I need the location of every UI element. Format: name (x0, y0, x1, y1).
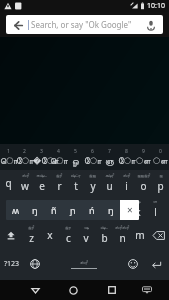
button[interactable]: Voice search (143, 17, 159, 33)
button[interactable]: Close (120, 200, 139, 220)
button[interactable]: ஹ (92, 196, 110, 222)
button[interactable]: Space (46, 248, 122, 280)
staticText: 5 (74, 148, 77, 155)
staticText: ʍ (12, 204, 20, 216)
staticText: r (57, 179, 62, 193)
button[interactable]: Shift (0, 222, 21, 248)
button[interactable]: 1 (0, 144, 16, 170)
button[interactable]: ஞ (56, 196, 74, 222)
button[interactable]: 5 (67, 144, 84, 170)
staticText: ஞ (63, 199, 68, 204)
staticText: o (140, 179, 147, 193)
button[interactable]: ஸ் (5, 196, 22, 222)
button[interactable]: Emoji (122, 248, 144, 280)
staticText: ஷ்ட்ர (70, 173, 81, 178)
button[interactable]: ங (74, 196, 92, 222)
staticText: ஜ (159, 173, 163, 178)
staticText: 10:10 (147, 1, 165, 11)
staticText: ஸ் (12, 199, 17, 204)
button[interactable]: 3 (33, 144, 50, 170)
staticText: ஷ்ட (100, 225, 108, 230)
staticText: ஜ்ஜ (89, 173, 96, 178)
button[interactable]: ஜஜஜ்ரீ (135, 170, 152, 196)
staticText: x (47, 228, 53, 242)
button[interactable]: 7 (101, 144, 118, 170)
staticText: ோ (84, 157, 101, 166)
staticText: t (74, 179, 78, 193)
staticText: ஸ்ரீ (123, 173, 130, 178)
button[interactable]: ŋ (101, 200, 120, 220)
staticText: கஷ்ட (36, 173, 47, 178)
button[interactable]: Hide keyboard (133, 280, 160, 300)
staticText: k (135, 205, 141, 219)
button[interactable]: 0 (152, 144, 169, 170)
staticText: க்ஷ்ரீ (105, 173, 114, 178)
button[interactable]: 6 (84, 144, 101, 170)
button[interactable]: க்ஷ்ரீ (101, 170, 118, 196)
staticText: p (157, 179, 164, 193)
staticText: m (135, 228, 145, 242)
button[interactable]: ஜ்ரீ (50, 170, 67, 196)
button[interactable]: Back (22, 280, 49, 300)
button[interactable]: 2 (16, 144, 33, 170)
button[interactable]: Recent apps (98, 280, 125, 300)
button[interactable]: 8 (118, 144, 135, 170)
button[interactable]: ஜ (110, 196, 128, 222)
button[interactable]: m (131, 222, 149, 248)
staticText: 4 (57, 148, 60, 155)
button[interactable]: ஷ (77, 222, 95, 248)
button[interactable]: Back (11, 18, 25, 32)
button[interactable]: ʍ (6, 200, 25, 220)
button[interactable]: Enter (144, 248, 169, 280)
staticText: ஜஜஜ்ரீ (137, 173, 150, 178)
button[interactable]: ŋ (25, 200, 44, 220)
staticText: 2 (23, 148, 26, 155)
staticText: z (29, 231, 34, 245)
button[interactable]: ஸ்ரீஸ்ரீ (113, 222, 131, 248)
button[interactable]: Backspace (149, 222, 169, 248)
button[interactable]: ஸ்ரீ (118, 170, 135, 196)
staticText: × (127, 203, 133, 217)
staticText: ?123 (4, 259, 20, 269)
staticText: v (83, 231, 89, 245)
staticText: ங (82, 199, 86, 204)
staticText: 8 (125, 148, 128, 155)
button[interactable]: ɲ (63, 200, 82, 220)
staticText: ń (89, 204, 95, 216)
staticText: 9 (142, 148, 145, 155)
staticText: ஜ்ர (65, 225, 71, 230)
staticText: ஷ (28, 199, 33, 204)
button[interactable]: ஜ்ரீ (21, 222, 40, 248)
button[interactable]: x (40, 222, 59, 248)
staticText: s (28, 205, 33, 219)
button[interactable]: ஷ்ட (95, 222, 113, 248)
button[interactable]: ஷ்ட்ர (67, 170, 84, 196)
button[interactable]: கஷ்ட (33, 170, 50, 196)
button[interactable]: q (0, 170, 16, 196)
staticText: ஜ்ரீ (28, 225, 34, 230)
staticText: u (106, 179, 113, 193)
button[interactable]: ஜ்ஜ (84, 170, 101, 196)
staticText: ள (153, 199, 157, 204)
button[interactable]: ஷ (22, 196, 39, 222)
button[interactable]: ஜ்ர (59, 222, 77, 248)
button[interactable]: ஜ் (39, 196, 56, 222)
staticText: n (119, 231, 126, 245)
button[interactable]: ஜ (152, 170, 169, 196)
button[interactable]: ஸ்ரீ (16, 170, 33, 196)
staticText: ஜ (117, 199, 121, 204)
button[interactable]: Change language (24, 248, 46, 280)
button[interactable]: ள (146, 196, 164, 222)
button[interactable]: ń (82, 200, 101, 220)
staticText: க்ஷ (134, 199, 141, 204)
button[interactable]: Symbols (0, 248, 24, 280)
button[interactable]: Search box (6, 15, 163, 34)
staticText: ஸ்ரீஸ்ரீ (115, 225, 129, 230)
button[interactable]: ñ (44, 200, 63, 220)
button[interactable]: க்ஷ (128, 196, 146, 222)
button[interactable]: 9 (135, 144, 152, 170)
button[interactable]: Home (60, 280, 87, 300)
button[interactable]: 4 (50, 144, 67, 170)
